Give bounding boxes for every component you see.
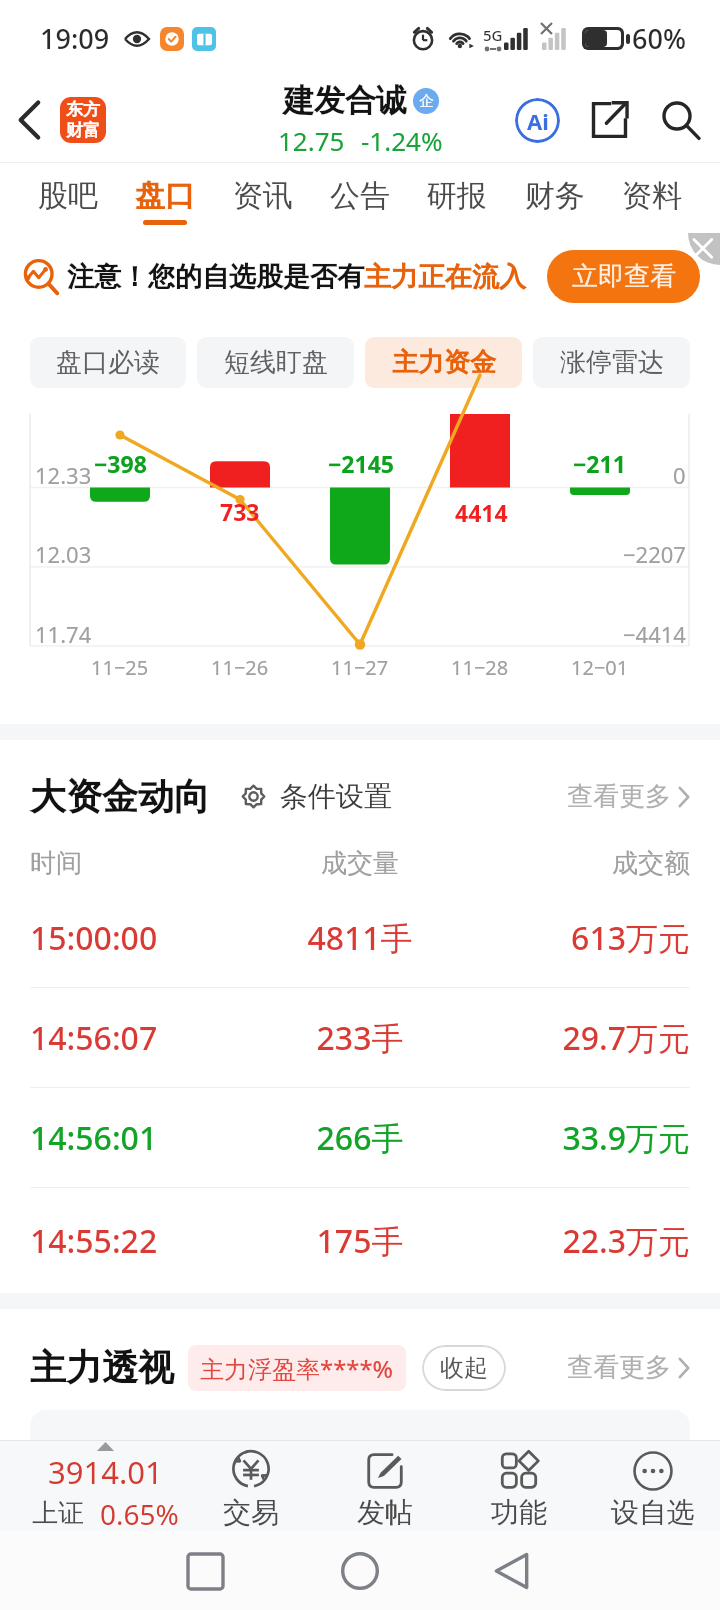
staticText: 条件设置: [280, 779, 392, 814]
staticText: 发帖: [357, 1495, 413, 1530]
staticText: 研报: [427, 177, 487, 215]
button[interactable]: 设自选: [586, 1443, 720, 1530]
button[interactable]: 立即查看: [547, 250, 700, 303]
button[interactable]: 3914.01: [0, 1441, 184, 1531]
button[interactable]: Home: [330, 1541, 390, 1601]
button[interactable]: 查看更多: [567, 780, 690, 813]
staticText: 交易: [223, 1495, 279, 1530]
button[interactable]: Back: [481, 1541, 541, 1601]
staticText: 大资金动向: [30, 774, 210, 819]
staticText: 60%: [632, 20, 686, 57]
staticText: 上证: [32, 1497, 84, 1530]
staticText: 12.03: [35, 539, 92, 569]
staticText: 14:56:07: [30, 1016, 250, 1060]
button[interactable]: 短线盯盘: [197, 337, 354, 388]
button[interactable]: Recents: [175, 1541, 235, 1601]
button[interactable]: 主力浮盈率****%: [188, 1345, 406, 1391]
staticText: 11−28: [451, 654, 509, 681]
staticText: 财务: [525, 177, 585, 215]
staticText: −398: [94, 448, 147, 479]
button[interactable]: 盘口: [127, 163, 203, 225]
button[interactable]: AI assistant: [508, 91, 566, 149]
staticText: 12.75: [278, 123, 345, 158]
staticText: 主力资金: [392, 346, 496, 379]
staticText: 股吧: [38, 177, 98, 215]
button[interactable]: 交易: [184, 1443, 318, 1530]
staticText: −2207: [623, 539, 686, 569]
staticText: 0.65%: [100, 1495, 179, 1531]
staticText: 233手: [250, 1016, 470, 1060]
button[interactable]: Back: [4, 95, 54, 145]
staticText: 立即查看: [572, 260, 676, 293]
button[interactable]: Share: [580, 91, 638, 149]
staticText: 查看更多: [567, 1351, 671, 1384]
staticText: 资讯: [233, 177, 293, 215]
button[interactable]: 14:56:01: [30, 1088, 690, 1187]
button[interactable]: Search: [652, 91, 710, 149]
staticText: 14:55:22: [30, 1219, 250, 1263]
staticText: 主力浮盈率****%: [200, 1352, 394, 1385]
staticText: 15:00:00: [30, 916, 250, 960]
staticText: 成交量: [250, 847, 470, 880]
button[interactable]: EastMoney home: [60, 97, 106, 143]
staticText: 29.7万元: [470, 1016, 690, 1060]
staticText: 主力透视: [30, 1345, 174, 1390]
button[interactable]: 查看更多: [567, 1351, 690, 1384]
staticText: 查看更多: [567, 780, 671, 813]
button[interactable]: 资讯: [225, 163, 301, 220]
staticText: 时间: [30, 847, 250, 880]
staticText: 公告: [330, 177, 390, 215]
button[interactable]: 收起: [422, 1345, 506, 1391]
staticText: 涨停雷达: [560, 346, 664, 379]
button[interactable]: 条件设置: [240, 779, 392, 814]
staticText: 建发合诚: [283, 81, 407, 120]
staticText: 733: [220, 496, 260, 527]
button[interactable]: 公告: [322, 163, 398, 220]
staticText: 功能: [491, 1495, 547, 1530]
staticText: 14:56:01: [30, 1116, 250, 1160]
button[interactable]: 财务: [517, 163, 593, 220]
staticText: 设自选: [611, 1495, 695, 1530]
staticText: −4414: [623, 619, 686, 649]
staticText: 短线盯盘: [224, 346, 328, 379]
button[interactable]: 资料: [614, 163, 690, 220]
staticText: 22.3万元: [470, 1219, 690, 1263]
staticText: 盘口必读: [56, 346, 160, 379]
staticText: 4811手: [250, 916, 470, 960]
staticText: 33.9万元: [470, 1116, 690, 1160]
button[interactable]: 14:56:07: [30, 988, 690, 1087]
staticText: 11.74: [35, 619, 92, 649]
button[interactable]: 主力资金: [365, 337, 522, 388]
staticText: 266手: [250, 1116, 470, 1160]
staticText: 19:09: [40, 20, 110, 57]
button[interactable]: 15:00:00: [30, 889, 690, 987]
staticText: 财富: [66, 120, 100, 141]
button[interactable]: Close banner: [687, 233, 720, 265]
staticText: 12.33: [35, 460, 92, 490]
staticText: 4414: [455, 497, 508, 528]
button[interactable]: 研报: [419, 163, 495, 220]
button[interactable]: 发帖: [318, 1443, 452, 1530]
staticText: 资料: [622, 177, 682, 215]
button[interactable]: 股吧: [30, 163, 106, 220]
button[interactable]: 功能: [452, 1443, 586, 1530]
staticText: −2145: [328, 448, 394, 479]
button[interactable]: 盘口必读: [30, 337, 186, 388]
staticText: 主力正在流入: [364, 260, 526, 294]
staticText: 盘口: [135, 177, 195, 215]
staticText: 3914.01: [48, 1451, 163, 1493]
staticText: 613万元: [470, 916, 690, 960]
staticText: 注意！您的自选股是否有: [67, 260, 364, 294]
staticText: -1.24%: [361, 123, 443, 158]
staticText: 11−26: [211, 654, 269, 681]
button[interactable]: 14:55:22: [30, 1188, 690, 1293]
staticText: −211: [573, 448, 626, 479]
staticText: 东方: [66, 99, 100, 120]
staticText: Ai: [527, 106, 549, 136]
staticText: 11−27: [331, 654, 389, 681]
staticText: 企: [419, 92, 434, 111]
staticText: 成交额: [470, 847, 690, 880]
staticText: 5G: [483, 25, 503, 45]
staticText: 175手: [250, 1219, 470, 1263]
button[interactable]: 涨停雷达: [533, 337, 690, 388]
